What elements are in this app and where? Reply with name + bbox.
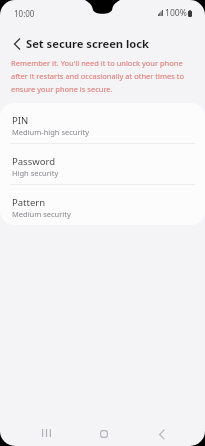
button[interactable]: Password bbox=[0, 144, 205, 184]
staticText: High security bbox=[12, 168, 59, 178]
staticText: 10:00 bbox=[14, 8, 35, 19]
staticText: Password bbox=[12, 155, 55, 168]
button[interactable]: Recent apps bbox=[27, 413, 65, 446]
button[interactable]: Back bbox=[142, 413, 180, 446]
button[interactable]: Home bbox=[85, 413, 123, 446]
staticText: Pattern bbox=[12, 196, 46, 209]
staticText: Medium-high security bbox=[12, 127, 90, 137]
button[interactable]: Navigate up bbox=[6, 31, 28, 53]
button[interactable]: Pattern bbox=[0, 185, 205, 225]
staticText: PIN bbox=[12, 114, 29, 127]
button[interactable]: PIN bbox=[0, 103, 205, 143]
staticText: Medium security bbox=[12, 209, 71, 219]
staticText: Remember it. You'll need it to unlock yo… bbox=[11, 58, 193, 94]
staticText: 100% bbox=[165, 7, 187, 19]
staticText: Set secure screen lock bbox=[26, 36, 150, 51]
